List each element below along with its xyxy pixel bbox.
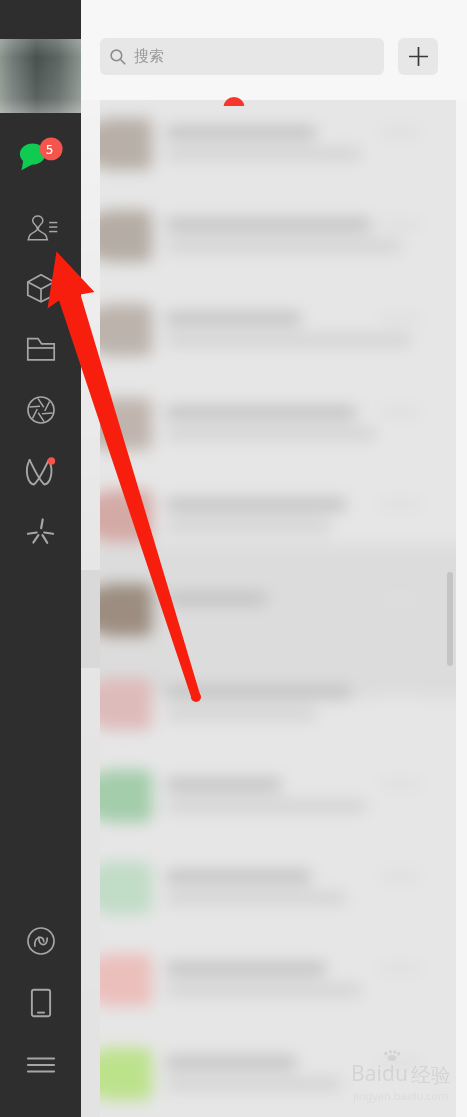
button[interactable]: Chats	[0, 137, 81, 173]
button[interactable]: More	[0, 1047, 81, 1083]
button[interactable]: Contacts	[0, 209, 81, 245]
other: Phone	[29, 988, 53, 1018]
other: Mini Programs	[27, 519, 54, 546]
button[interactable]: Favorites	[0, 331, 81, 367]
button[interactable]: Phone	[0, 985, 81, 1021]
button[interactable]: Add	[398, 38, 438, 75]
button[interactable]: 搜索	[100, 38, 384, 75]
other: Moments	[27, 396, 55, 424]
button[interactable]: Mini Program	[0, 923, 81, 959]
button[interactable]: Mini Programs	[0, 514, 81, 550]
other: Mini Program	[27, 927, 55, 955]
staticText: Bai	[351, 1059, 382, 1088]
button[interactable]: Channels	[0, 453, 81, 489]
other: Channels	[24, 457, 57, 486]
staticText: 搜索	[134, 47, 164, 66]
staticText: 5	[46, 141, 53, 157]
other: Favorites	[26, 336, 56, 362]
other: More	[27, 1056, 55, 1074]
other: Storage	[26, 273, 56, 303]
staticText: du	[382, 1059, 408, 1088]
staticText: 经验	[411, 1063, 451, 1088]
button[interactable]: Storage	[0, 270, 81, 306]
other: Contacts	[24, 213, 58, 242]
button[interactable]: Moments	[0, 392, 81, 428]
other: Chats	[19, 139, 63, 171]
